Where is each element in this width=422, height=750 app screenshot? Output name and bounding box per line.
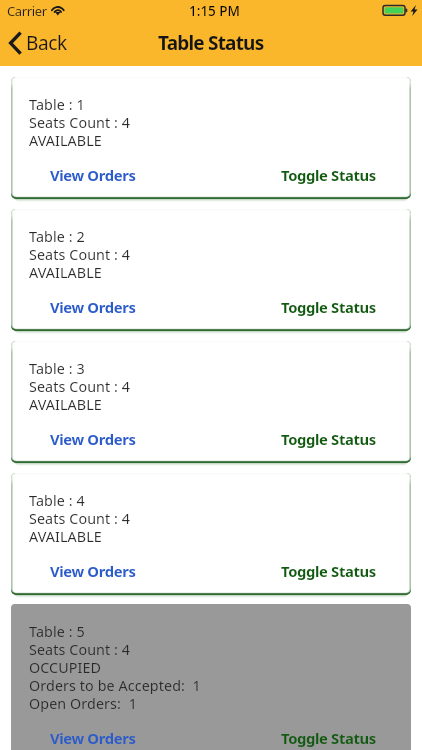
staticText: Seats Count : 4 [29,245,131,263]
staticText: Table : 5 [29,622,85,640]
button[interactable]: Table : 1 [11,77,411,199]
staticText: AVAILABLE [29,527,102,545]
staticText: Toggle Status [281,561,376,581]
staticText: Orders to be Accepted: 1 [29,676,201,694]
button[interactable]: Table : 3 [11,341,411,463]
button[interactable]: Toggle Status [264,427,393,451]
button[interactable]: Back [0,24,72,66]
button[interactable]: View Orders [29,559,157,583]
staticText: View Orders [50,561,136,581]
staticText: Table : 4 [29,491,85,509]
staticText: Back [26,30,67,56]
button[interactable]: Toggle Status [264,295,393,319]
button[interactable]: View Orders [29,163,157,187]
staticText: AVAILABLE [29,131,102,149]
staticText: Toggle Status [281,728,376,748]
button[interactable]: View Orders [29,427,157,451]
staticText: View Orders [50,728,136,748]
staticText: AVAILABLE [29,263,102,281]
staticText: View Orders [50,165,136,185]
staticText: View Orders [50,429,136,449]
button[interactable]: Table : 4 [11,473,411,595]
staticText: Seats Count : 4 [29,640,131,658]
staticText: 1:15 PM [189,2,240,20]
staticText: Toggle Status [281,297,376,317]
staticText: Table Status [158,30,264,56]
staticText: Seats Count : 4 [29,377,131,395]
button[interactable]: View Orders [29,726,157,750]
staticText: Table : 2 [29,227,85,245]
staticText: Toggle Status [281,429,376,449]
button[interactable]: Table : 2 [11,209,411,331]
staticText: Toggle Status [281,165,376,185]
button[interactable]: Table : 5 [11,604,411,750]
staticText: Table : 1 [29,95,85,113]
button[interactable]: Toggle Status [264,559,393,583]
button[interactable]: Toggle Status [264,163,393,187]
staticText: Open Orders: 1 [29,694,137,712]
staticText: Seats Count : 4 [29,509,131,527]
staticText: Seats Count : 4 [29,113,131,131]
staticText: View Orders [50,297,136,317]
button[interactable]: Toggle Status [264,726,393,750]
staticText: OCCUPIED [29,658,102,676]
staticText: AVAILABLE [29,395,102,413]
button[interactable]: View Orders [29,295,157,319]
staticText: Carrier [7,2,47,20]
staticText: Table : 3 [29,359,85,377]
